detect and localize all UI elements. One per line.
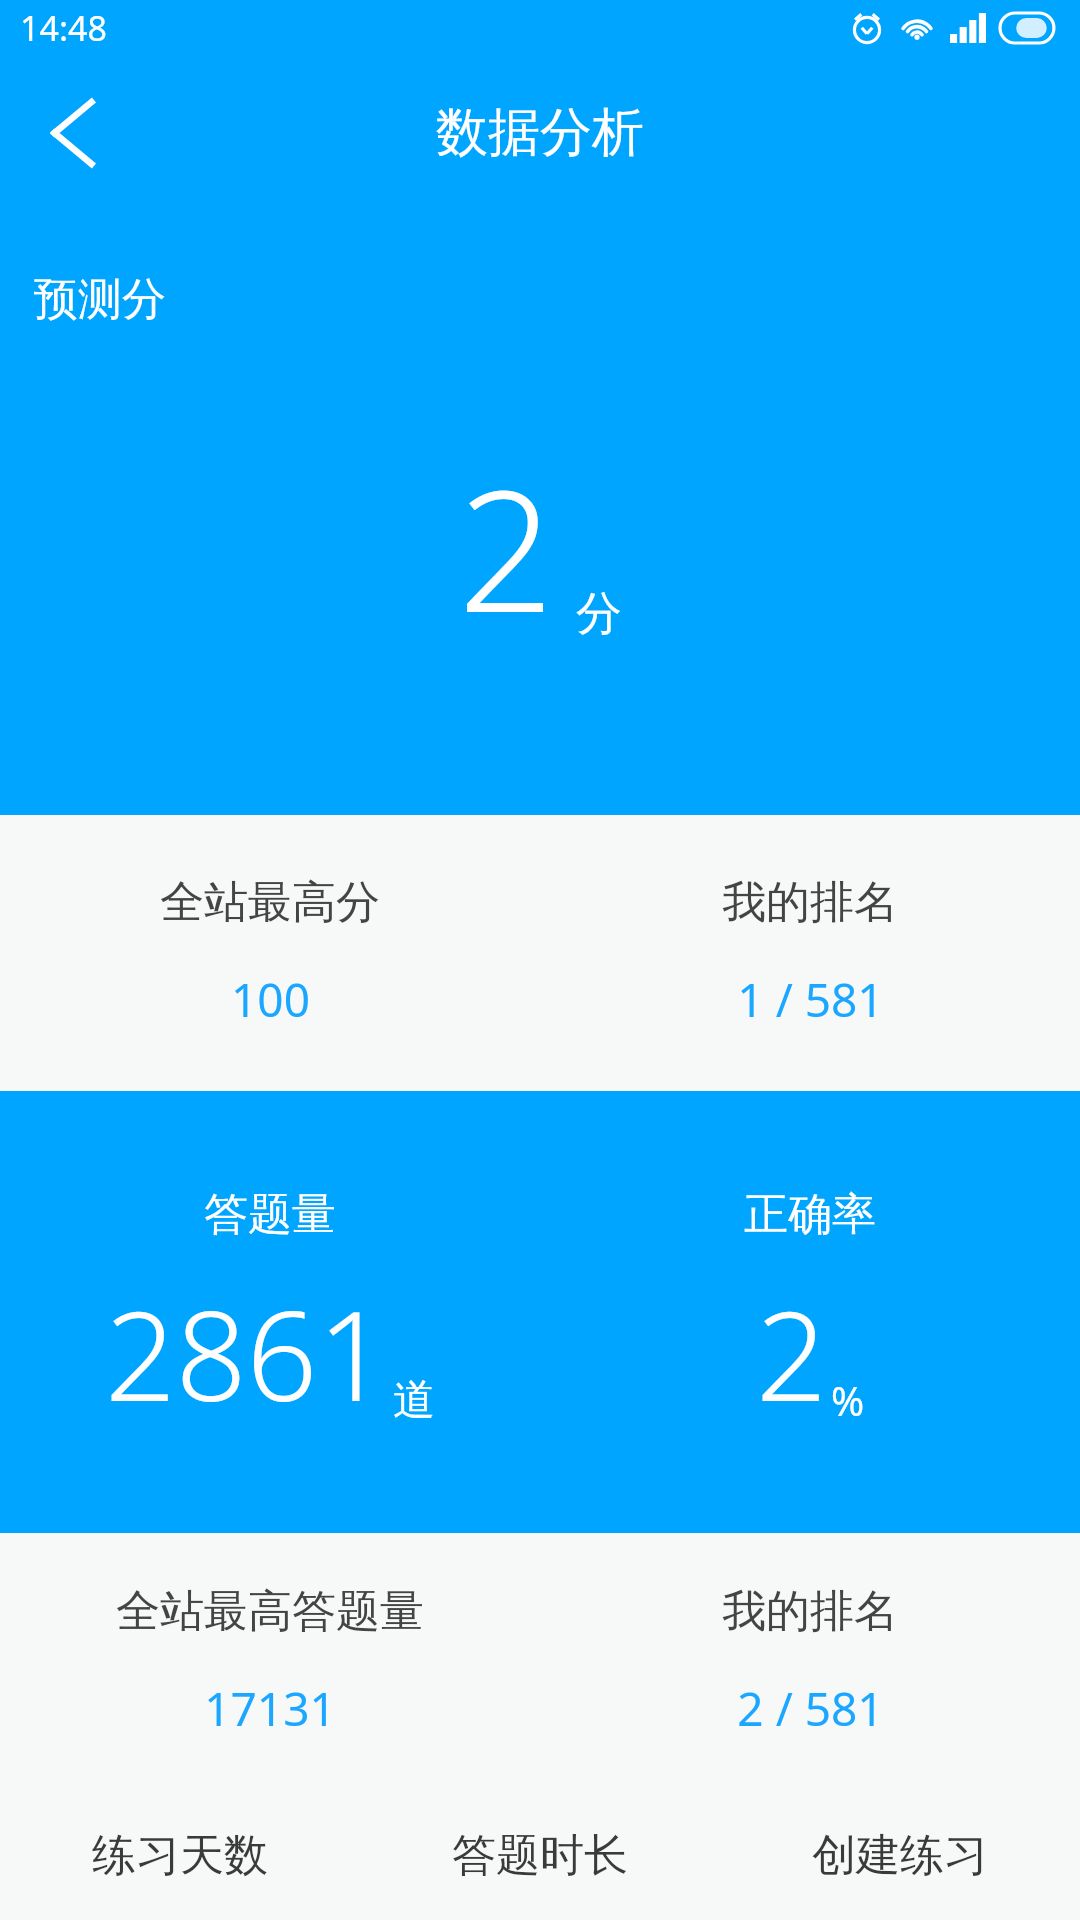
staticText: 全站最高分	[160, 875, 380, 930]
staticText: 14:48	[20, 5, 107, 51]
staticText: 2	[458, 432, 554, 661]
staticText: 17131	[204, 1677, 336, 1740]
button[interactable]: 正确率	[540, 1091, 1080, 1533]
staticText: 道	[393, 1374, 435, 1427]
button[interactable]: 全站最高答题量	[0, 1533, 540, 1790]
button[interactable]: 练习天数	[0, 1790, 360, 1920]
button[interactable]: 答题时长	[360, 1790, 720, 1920]
button[interactable]: 我的排名	[540, 815, 1080, 1091]
staticText: 分	[576, 585, 622, 643]
staticText: 答题时长	[452, 1828, 628, 1883]
staticText: 数据分析	[436, 100, 644, 166]
staticText: 答题量	[204, 1187, 336, 1242]
staticText: 我的排名	[722, 875, 898, 930]
staticText: 全站最高答题量	[116, 1584, 424, 1639]
staticText: 2 / 581	[737, 1677, 884, 1740]
button[interactable]: 全站最高分	[0, 815, 540, 1091]
staticText: 2861	[105, 1268, 389, 1437]
staticText: 正确率	[744, 1187, 876, 1242]
button[interactable]: 我的排名	[540, 1533, 1080, 1790]
staticText: 预测分	[34, 272, 166, 327]
staticText: 2	[756, 1268, 827, 1437]
button[interactable]: 答题量	[0, 1091, 540, 1533]
staticText: 我的排名	[722, 1584, 898, 1639]
button[interactable]: 创建练习	[720, 1790, 1080, 1920]
staticText: 1 / 581	[737, 968, 884, 1031]
staticText: 100	[231, 968, 310, 1031]
staticText: 练习天数	[92, 1828, 268, 1883]
staticText: 创建练习	[812, 1828, 988, 1883]
staticText: %	[831, 1373, 865, 1427]
button[interactable]: Back	[18, 78, 128, 188]
